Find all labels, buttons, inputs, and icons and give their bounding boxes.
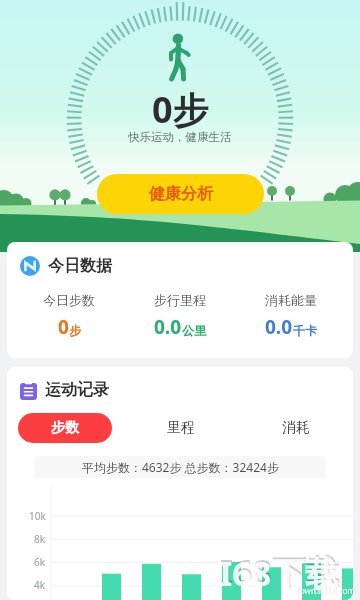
staticText: 今日步数: [43, 292, 95, 308]
staticText: down.it168.com: [296, 585, 356, 596]
staticText: 快乐运动，健康生活: [128, 130, 232, 144]
staticText: 消耗能量: [265, 292, 317, 308]
staticText: 0: [58, 314, 69, 340]
staticText: 步行里程: [154, 292, 206, 308]
staticText: 千卡: [293, 323, 317, 338]
staticText: 0步: [152, 85, 209, 134]
button[interactable]: 里程: [123, 413, 238, 443]
staticText: 0.0: [265, 314, 293, 340]
staticText: 健康分析: [149, 184, 213, 204]
staticText: 8k: [34, 532, 46, 546]
staticText: I68下载: [219, 550, 340, 596]
staticText: 平均步数：4632步 总步数：32424步: [82, 459, 279, 475]
button[interactable]: 消耗: [238, 413, 353, 443]
staticText: 运动记录: [45, 380, 109, 400]
staticText: 消耗: [282, 419, 310, 437]
staticText: 步数: [51, 419, 79, 437]
staticText: 里程: [167, 419, 195, 437]
staticText: 今日数据: [48, 256, 112, 276]
staticText: 公里: [182, 323, 206, 338]
staticText: 步: [69, 323, 81, 338]
button[interactable]: 步数: [18, 413, 112, 443]
staticText: down.it168.com: [295, 585, 355, 596]
staticText: 4k: [34, 578, 46, 592]
staticText: 6k: [34, 555, 46, 569]
staticText: I68下载: [220, 548, 341, 594]
staticText: 0.0: [154, 314, 182, 340]
staticText: 10k: [29, 509, 46, 523]
button[interactable]: 健康分析: [97, 174, 264, 214]
